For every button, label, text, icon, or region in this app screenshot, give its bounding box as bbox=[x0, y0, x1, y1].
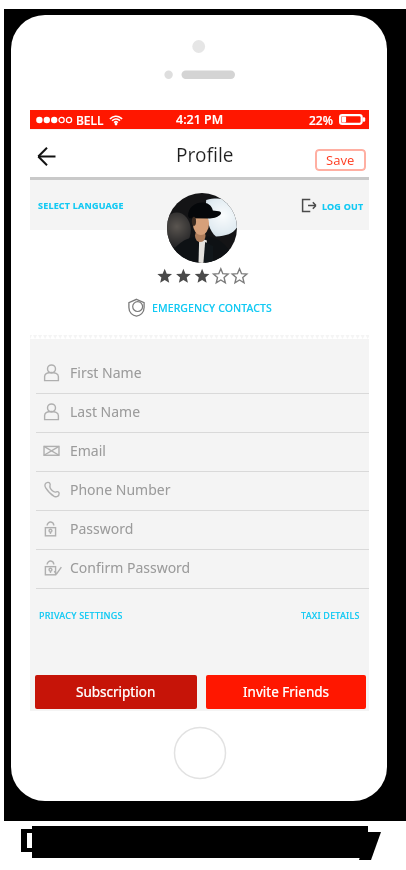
button[interactable]: First Name bbox=[30, 355, 369, 394]
button[interactable]: Invite Friends bbox=[206, 675, 366, 709]
button[interactable]: LOG OUT bbox=[301, 198, 364, 213]
button[interactable]: Back bbox=[29, 139, 63, 173]
staticText: Phone Number bbox=[70, 480, 171, 499]
button[interactable]: EMERGENCY CONTACTS bbox=[127, 298, 272, 317]
staticText: Invite Friends bbox=[243, 683, 330, 701]
staticText: Last Name bbox=[70, 402, 141, 421]
staticText: Subscription bbox=[76, 683, 156, 701]
button[interactable]: Last Name bbox=[30, 394, 369, 433]
staticText: EMERGENCY CONTACTS bbox=[152, 301, 272, 315]
button[interactable]: Phone Number bbox=[30, 472, 369, 511]
staticText: BELL bbox=[76, 112, 104, 128]
staticText: 22% bbox=[309, 112, 333, 128]
staticText: First Name bbox=[70, 363, 142, 382]
staticText: 4:21 PM bbox=[176, 111, 224, 128]
button[interactable]: PRIVACY SETTINGS bbox=[39, 609, 123, 621]
button[interactable]: Confirm Password bbox=[30, 550, 369, 589]
staticText: Password bbox=[70, 519, 134, 538]
button[interactable]: Email bbox=[30, 433, 369, 472]
staticText: Profile bbox=[176, 142, 234, 168]
staticText: LOG OUT bbox=[322, 200, 364, 212]
button[interactable]: Profile photo bbox=[167, 193, 237, 263]
staticText: Save bbox=[326, 151, 355, 169]
button[interactable]: Save bbox=[315, 149, 366, 171]
button[interactable]: TAXI DETAILS bbox=[301, 609, 360, 621]
button[interactable]: Password bbox=[30, 511, 369, 550]
button[interactable]: SELECT LANGUAGE bbox=[38, 199, 124, 211]
button[interactable]: Subscription bbox=[35, 675, 197, 709]
staticText: Email bbox=[70, 441, 106, 460]
staticText: Confirm Password bbox=[70, 558, 191, 577]
